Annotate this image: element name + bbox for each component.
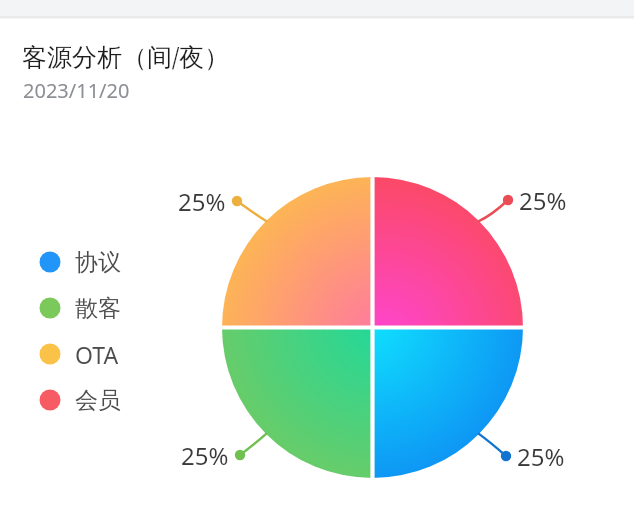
button[interactable]: 客源分析 间/夜 饼图 — [0, 0, 634, 507]
